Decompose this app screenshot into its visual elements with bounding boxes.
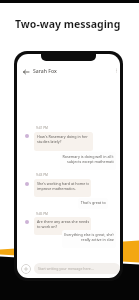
staticText: Two-way messaging: [15, 17, 121, 31]
staticText: She's working hard at home to improve ma…: [37, 181, 89, 191]
button[interactable]: She's working hard at home to improve ma…: [34, 179, 91, 197]
staticText: 9:43 PM: [36, 173, 48, 177]
staticText: Everything else is great, she's really a…: [64, 232, 114, 242]
button[interactable]: More options: [112, 66, 120, 75]
staticText: Sarah Fox: [33, 68, 57, 75]
button[interactable]: Start writing your message here...: [34, 263, 120, 274]
staticText: How's Rosemary doing in her studies late…: [37, 134, 88, 144]
staticText: That's great to hear.: [80, 200, 106, 205]
button[interactable]: Everything else is great, she's really a…: [62, 230, 116, 248]
button[interactable]: Are there any areas she needs to work on…: [34, 217, 91, 235]
button[interactable]: Back: [21, 67, 31, 77]
staticText: Are there any areas she needs to work on…: [37, 219, 89, 229]
staticText: Start writing your message here...: [38, 266, 94, 271]
staticText: 9:45 PM: [36, 212, 48, 216]
button[interactable]: That's great to hear.: [78, 198, 108, 209]
button[interactable]: Add attachment: [21, 264, 31, 274]
button[interactable]: Rosemary is doing well in all the subjec…: [60, 152, 116, 170]
staticText: Rosemary is doing well in all the subjec…: [62, 154, 114, 164]
button[interactable]: How's Rosemary doing in her studies late…: [34, 132, 93, 151]
staticText: 9:41 PM: [36, 126, 48, 130]
